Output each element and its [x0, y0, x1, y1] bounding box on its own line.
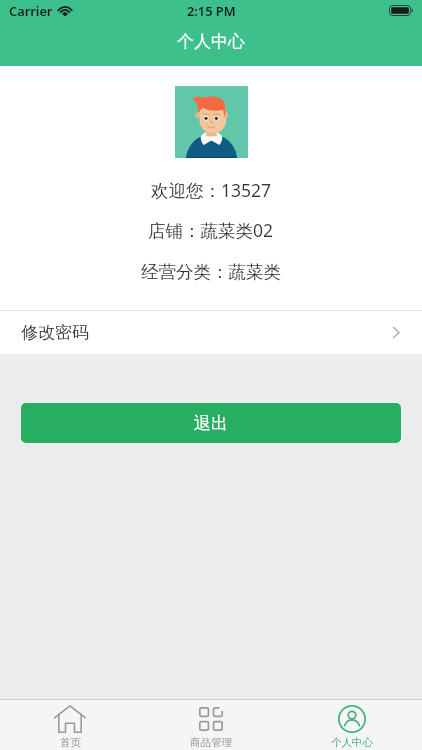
staticText: 店铺：蔬菜类02 — [148, 218, 274, 242]
button[interactable]: Home — [0, 700, 140, 750]
staticText: Carrier — [9, 2, 53, 19]
staticText: 个人中心 — [331, 736, 373, 749]
button[interactable]: 退出 — [21, 403, 401, 443]
staticText: 退出 — [194, 413, 228, 434]
staticText: 2:15 PM — [187, 2, 236, 19]
button[interactable]: Profile — [281, 700, 422, 750]
button[interactable]: 修改密码 — [0, 311, 422, 354]
staticText: 个人中心 — [177, 31, 245, 52]
staticText: 经营分类：蔬菜类 — [141, 261, 281, 283]
staticText: 修改密码 — [21, 322, 89, 343]
staticText: 首页 — [60, 736, 81, 749]
staticText: 商品管理 — [190, 736, 232, 749]
button[interactable]: Products — [140, 700, 281, 750]
staticText: 欢迎您：13527 — [151, 178, 272, 202]
